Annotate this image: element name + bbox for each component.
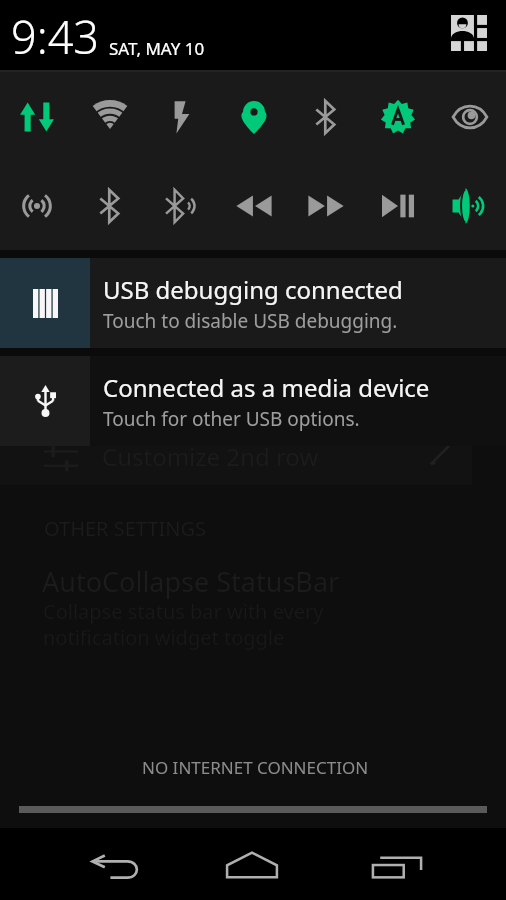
staticText: Connected as a media device bbox=[103, 371, 430, 404]
button[interactable]: Bluetooth audio bbox=[146, 161, 218, 250]
staticText: OTHER SETTINGS bbox=[44, 515, 206, 542]
button[interactable]: USB debugging connected bbox=[0, 258, 506, 348]
staticText: USB debugging connected bbox=[103, 273, 403, 306]
staticText: NO INTERNET CONNECTION bbox=[142, 756, 369, 779]
button[interactable]: Ambient display bbox=[434, 72, 506, 161]
button[interactable]: Bluetooth toggle bbox=[73, 161, 146, 250]
button[interactable]: Bluetooth bbox=[290, 72, 362, 161]
button[interactable]: Recent apps bbox=[369, 839, 425, 895]
button[interactable]: Home bbox=[224, 839, 280, 895]
staticText: Touch to disable USB debugging. bbox=[103, 308, 398, 334]
button[interactable]: Auto rotate bbox=[362, 72, 434, 161]
button[interactable]: Wi-Fi bbox=[73, 72, 146, 161]
button[interactable]: Location bbox=[218, 72, 290, 161]
button[interactable]: Flashlight bbox=[146, 72, 218, 161]
staticText: SAT, MAY 10 bbox=[109, 37, 205, 60]
button[interactable]: Volume bbox=[434, 161, 506, 250]
button[interactable]: Back bbox=[88, 839, 144, 895]
button[interactable]: Mobile data bbox=[0, 72, 73, 161]
staticText: 9:43 bbox=[11, 6, 100, 67]
button[interactable]: Next track bbox=[290, 161, 362, 250]
staticText: AutoCollapse StatusBar bbox=[42, 563, 340, 600]
button[interactable]: Hotspot bbox=[0, 161, 73, 250]
staticText: Touch for other USB options. bbox=[103, 406, 360, 432]
button[interactable]: Previous track bbox=[218, 161, 290, 250]
button[interactable]: Quick settings bbox=[446, 10, 492, 56]
button[interactable]: Connected as a media device bbox=[0, 356, 506, 446]
button[interactable]: Play pause bbox=[362, 161, 434, 250]
